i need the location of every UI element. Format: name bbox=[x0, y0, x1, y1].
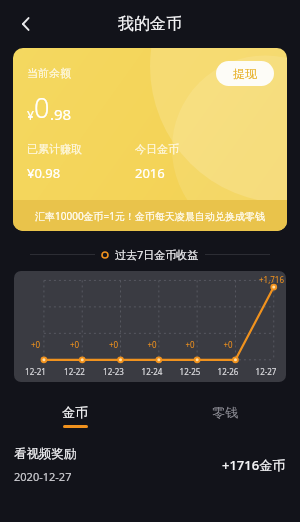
staticText: 12-25 bbox=[171, 366, 209, 377]
staticText: +0 bbox=[94, 339, 133, 350]
staticText: ¥ bbox=[27, 107, 34, 123]
staticText: 过去7日金币收益 bbox=[115, 247, 199, 262]
staticText: 看视频奖励 bbox=[14, 446, 77, 462]
staticText: +1,716 bbox=[259, 274, 285, 285]
button[interactable]: 提现 bbox=[216, 61, 274, 86]
staticText: 金币 bbox=[62, 404, 88, 420]
staticText: +0 bbox=[16, 339, 55, 350]
staticText: 12-27 bbox=[247, 366, 285, 377]
staticText: +0 bbox=[55, 339, 94, 350]
staticText: 零钱 bbox=[212, 404, 238, 420]
button[interactable]: 零钱 bbox=[150, 398, 300, 434]
button[interactable]: 看视频奖励 bbox=[0, 434, 300, 496]
staticText: ¥0.98 bbox=[27, 164, 61, 182]
staticText: .98 bbox=[50, 104, 72, 124]
staticText: 12-23 bbox=[94, 366, 133, 377]
button[interactable]: 金币 bbox=[0, 398, 150, 434]
staticText: 12-26 bbox=[209, 366, 247, 377]
staticText: 2016 bbox=[135, 164, 165, 182]
staticText: +1716金币 bbox=[222, 456, 286, 474]
staticText: 我的金币 bbox=[118, 14, 182, 34]
staticText: 0 bbox=[34, 89, 50, 126]
staticText: 提现 bbox=[233, 66, 257, 81]
staticText: 今日金币 bbox=[135, 142, 179, 156]
staticText: +0 bbox=[209, 339, 247, 350]
staticText: +0 bbox=[171, 339, 209, 350]
staticText: 汇率10000金币=1元！金币每天凌晨自动兑换成零钱 bbox=[35, 209, 266, 223]
button[interactable]: Back bbox=[6, 4, 46, 44]
staticText: +0 bbox=[133, 339, 171, 350]
staticText: 2020-12-27 bbox=[14, 469, 72, 484]
staticText: 当前余额 bbox=[27, 66, 71, 80]
staticText: 12-24 bbox=[133, 366, 171, 377]
staticText: 12-21 bbox=[16, 366, 55, 377]
staticText: 12-22 bbox=[55, 366, 94, 377]
staticText: 已累计赚取 bbox=[27, 142, 82, 156]
